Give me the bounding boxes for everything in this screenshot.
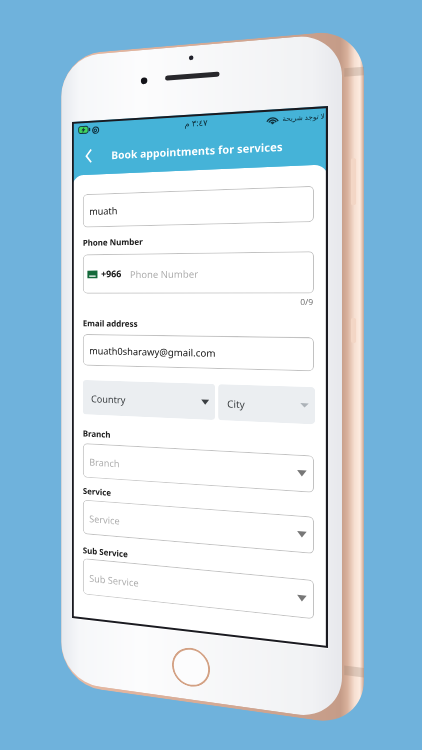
button[interactable]: muath xyxy=(12,76,247,111)
button[interactable]: City xyxy=(154,270,248,306)
button[interactable]: Service xyxy=(12,395,247,431)
button[interactable]: Home xyxy=(119,607,158,646)
staticText: Email address xyxy=(12,205,72,217)
staticText: Book appointments for services xyxy=(43,29,218,44)
button[interactable]: Branch xyxy=(12,336,247,372)
staticText: Sub Service xyxy=(19,469,73,482)
staticText: Phone Number xyxy=(63,153,134,166)
button[interactable]: Sub Service xyxy=(12,456,247,494)
staticText: City xyxy=(163,282,181,295)
button[interactable]: muath0sharawy@gmail.com xyxy=(12,222,247,255)
button[interactable]: Country xyxy=(12,270,151,306)
staticText: 0/9 xyxy=(234,182,247,193)
button[interactable]: +966 xyxy=(12,139,247,180)
staticText: Phone Number xyxy=(12,121,77,133)
staticText: muath0sharawy@gmail.com xyxy=(19,232,152,245)
